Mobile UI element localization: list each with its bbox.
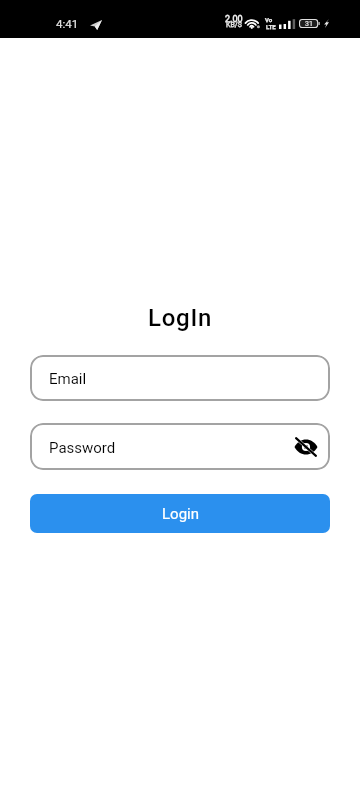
button[interactable]: Show password (291, 432, 321, 462)
staticText: Email (49, 370, 87, 388)
staticText: KB/S (226, 21, 242, 29)
staticText: 4:41 (56, 17, 79, 30)
button[interactable]: Password (30, 423, 330, 470)
button[interactable]: Login (30, 494, 330, 533)
staticText: Password (49, 439, 116, 457)
staticText: 2.00 (225, 14, 243, 25)
staticText: Vo (265, 16, 273, 23)
button[interactable]: Email (30, 355, 330, 401)
staticText: LTE (266, 23, 276, 30)
staticText: 31 (305, 20, 313, 28)
staticText: Login (162, 505, 199, 523)
staticText: LogIn (0, 304, 360, 332)
